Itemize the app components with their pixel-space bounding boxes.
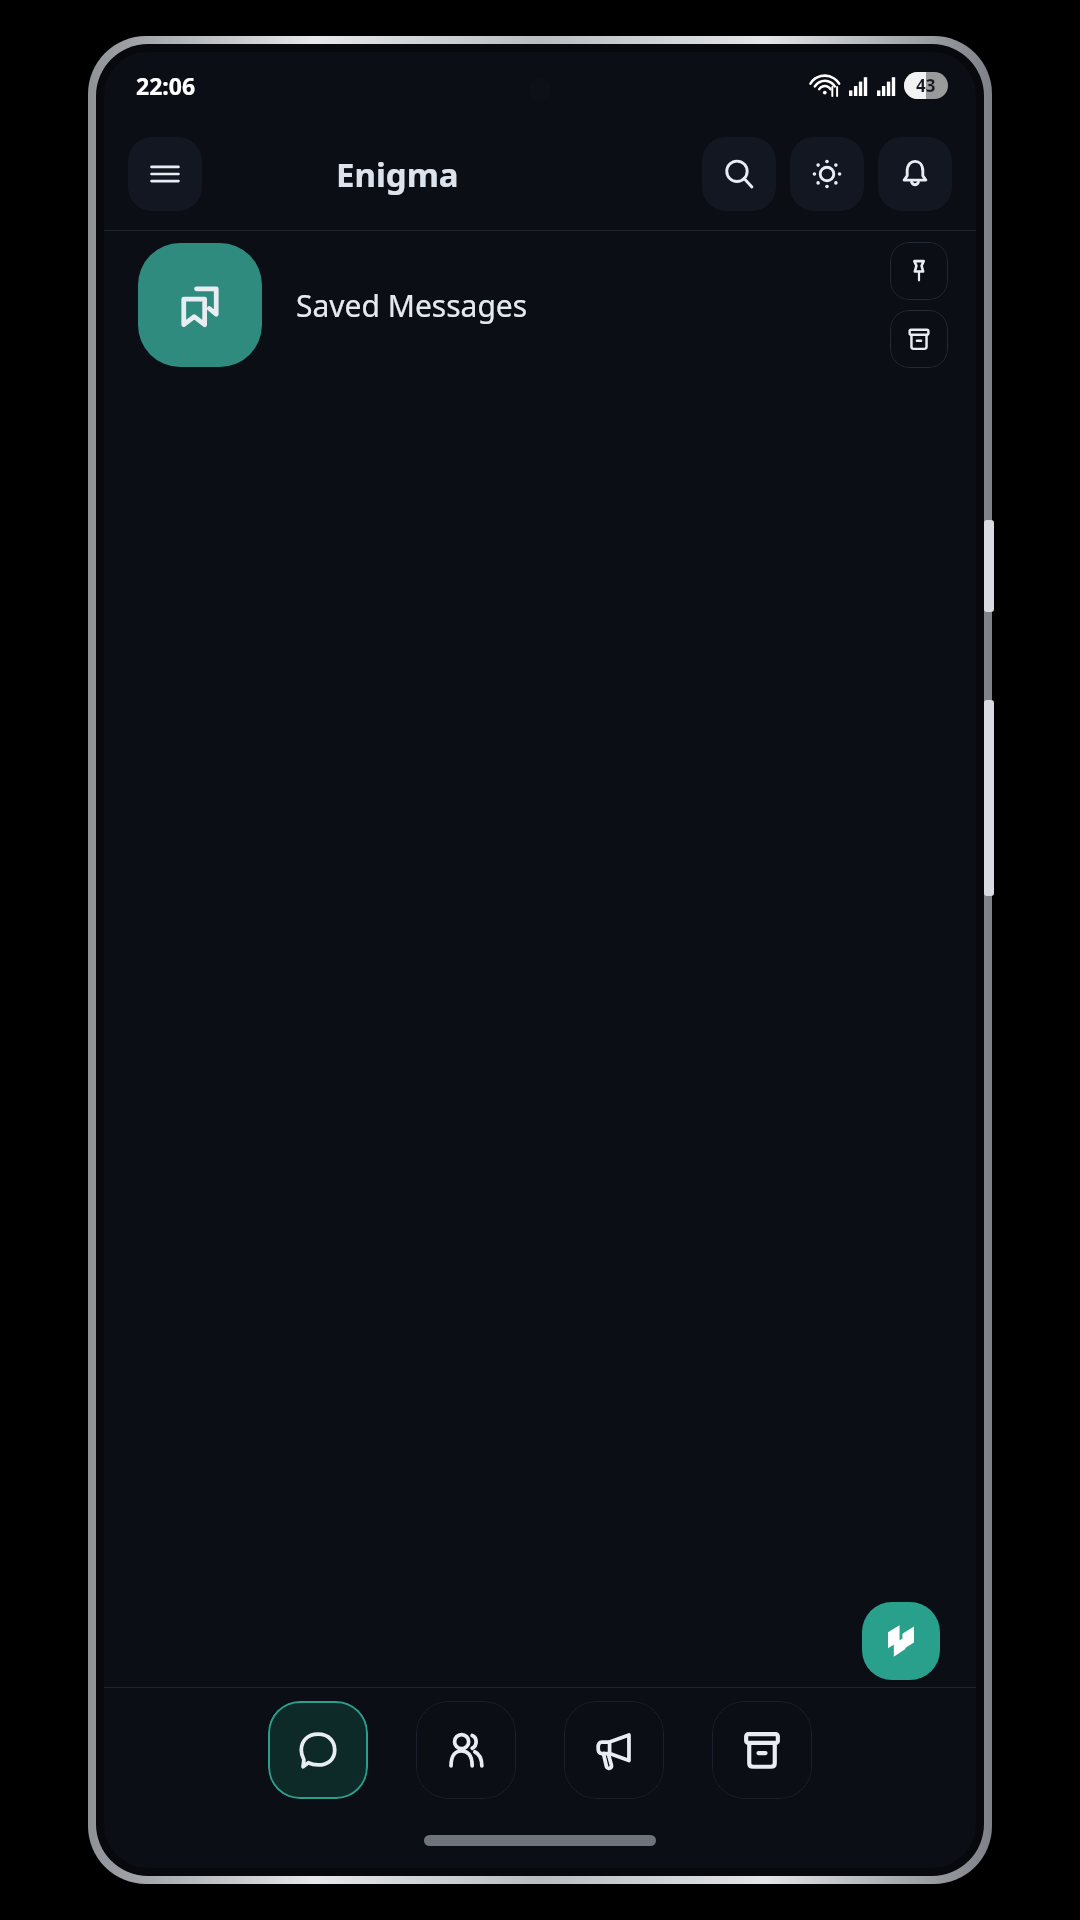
- button[interactable]: Chats: [268, 1701, 368, 1799]
- staticText: 22:06: [136, 70, 196, 101]
- button[interactable]: Archive: [890, 310, 948, 368]
- staticText: Enigma: [336, 152, 459, 197]
- button[interactable]: New message: [862, 1602, 940, 1680]
- button[interactable]: Notifications: [878, 137, 952, 211]
- staticText: 43: [916, 74, 936, 97]
- button[interactable]: Theme: [790, 137, 864, 211]
- button[interactable]: Channels: [564, 1701, 664, 1799]
- button[interactable]: Menu: [128, 137, 202, 211]
- button[interactable]: Archive: [712, 1701, 812, 1799]
- button[interactable]: Contacts: [416, 1701, 516, 1799]
- button[interactable]: Search: [702, 137, 776, 211]
- button[interactable]: Pin: [890, 242, 948, 300]
- button[interactable]: Saved Messages: [104, 231, 976, 379]
- staticText: Saved Messages: [296, 285, 528, 326]
